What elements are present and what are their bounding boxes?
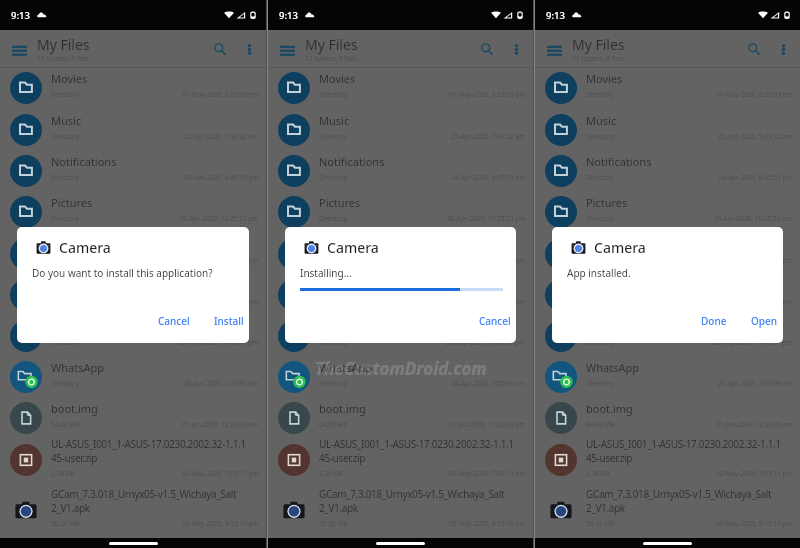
button[interactable]: GCam_7.3.018_Urnyx05-v1.5_Wichaya_Salt [268,486,533,534]
button[interactable]: Search [475,37,499,61]
staticText: WhatsApp [586,360,639,375]
staticText: Directory [51,90,80,99]
staticText: 9:13 [546,9,565,22]
staticText: Directory [51,379,80,388]
button[interactable]: Menu [274,36,300,62]
staticText: Pictures [51,195,93,210]
button[interactable]: Movies [535,67,800,109]
staticText: 9:13 [11,9,30,22]
staticText: Movies [51,71,88,86]
staticText: 24-Apr-2020, 8:45:53 pm [718,173,793,182]
staticText: Directory [319,214,348,223]
button[interactable]: WhatsApp [535,356,800,398]
button[interactable]: Ringtones [535,274,800,316]
staticText: Movies [586,71,623,86]
staticText: Music [51,113,82,128]
button[interactable]: More options [240,40,258,58]
staticText: 06-May-2020, 9:13:10 pm [182,519,259,528]
button[interactable]: Pictures [0,191,266,233]
staticText: Open [751,314,778,328]
button[interactable]: Done [698,312,730,330]
button[interactable]: Telegram [535,315,800,357]
button[interactable]: GCam_7.3.018_Urnyx05-v1.5_Wichaya_Salt [535,486,800,534]
staticText: boot.img [319,401,366,416]
staticText: 2.26 GB [319,469,343,478]
staticText: Cancel [158,314,190,328]
staticText: Directory [586,173,615,182]
button[interactable]: Pictures [535,191,800,233]
button[interactable]: Ringtones [0,274,266,316]
button[interactable]: boot.img [0,397,266,439]
button[interactable]: UL-ASUS_I001_1-ASUS-17.0230.2002.32-1.1.… [535,436,800,484]
button[interactable]: Podcasts [0,233,266,275]
staticText: 12 folders, 3 files [37,54,89,63]
button[interactable]: Open [748,312,781,330]
button[interactable]: More options [507,40,525,58]
button[interactable]: Ringtones [268,274,533,316]
button[interactable]: WhatsApp [0,356,266,398]
staticText: 9:13 [279,9,298,22]
button[interactable]: boot.img [268,397,533,439]
staticText: Podcasts [319,237,366,252]
button[interactable]: GCam_7.3.018_Urnyx05-v1.5_Wichaya_Salt [0,486,266,534]
button[interactable]: Menu [541,36,567,62]
staticText: Directory [319,338,348,347]
button[interactable]: Music [0,109,266,151]
staticText: boot.img [51,401,98,416]
staticText: 2.26 GB [51,469,75,478]
staticText: 01-May-2020, 6:23:09 pm [716,90,793,99]
staticText: 30-Apr-2020, 10:25:23 pm [714,214,793,223]
button[interactable]: UL-ASUS_I001_1-ASUS-17.0230.2002.32-1.1.… [268,436,533,484]
staticText: Music [319,113,350,128]
staticText: 26-Apr-2020, 2:00:00 am [718,379,793,388]
button[interactable]: Install [211,312,247,330]
button[interactable]: Cancel [155,312,193,330]
button[interactable]: boot.img [535,397,800,439]
button[interactable]: More options [774,40,792,58]
staticText: 64.00 MB [51,420,80,429]
staticText: 06-May-2020, 9:13:10 pm [716,519,793,528]
staticText: Directory [51,214,80,223]
staticText: 02-May-2020, 10:43:01 pm [712,338,793,347]
button[interactable]: Search [208,37,232,61]
button[interactable]: Podcasts [268,233,533,275]
button[interactable]: Telegram [0,315,266,357]
staticText: 2.26 GB [586,469,610,478]
staticText: TheCustomDroid.com [315,357,487,380]
staticText: 2_V1.apk [586,501,625,515]
staticText: Directory [319,90,348,99]
staticText: 01-Jan-2009, 12:00:00 am [449,420,526,429]
staticText: 24-Apr-2020, 8:45:51 pm [184,256,259,265]
button[interactable]: Movies [0,67,266,109]
button[interactable]: Podcasts [535,233,800,275]
staticText: Do you want to install this application? [32,266,213,280]
button[interactable]: Menu [6,36,32,62]
button[interactable]: Music [268,109,533,151]
staticText: 50.26 MB [51,519,80,528]
staticText: Directory [51,173,80,182]
staticText: My Files [37,35,90,54]
staticText: Camera [327,238,379,257]
button[interactable]: Movies [268,67,533,109]
staticText: 12 folders, 3 files [305,54,357,63]
staticText: UL-ASUS_I001_1-ASUS-17.0230.2002.32-1.1.… [51,437,246,451]
button[interactable]: WhatsApp [268,356,533,398]
button[interactable]: Notifications [268,150,533,192]
button[interactable]: Pictures [268,191,533,233]
button[interactable]: Cancel [476,312,514,330]
button[interactable]: Telegram [268,315,533,357]
button[interactable]: Notifications [0,150,266,192]
staticText: Movies [319,71,356,86]
staticText: 25-Apr-2020, 5:43:32 am [184,132,259,141]
staticText: 01-May-2020, 6:23:09 pm [449,90,526,99]
button[interactable]: UL-ASUS_I001_1-ASUS-17.0230.2002.32-1.1.… [0,436,266,484]
staticText: App installed. [567,266,631,280]
staticText: UL-ASUS_I001_1-ASUS-17.0230.2002.32-1.1.… [586,437,781,451]
button[interactable]: Search [742,37,766,61]
button[interactable]: Notifications [535,150,800,192]
button[interactable]: Music [535,109,800,151]
